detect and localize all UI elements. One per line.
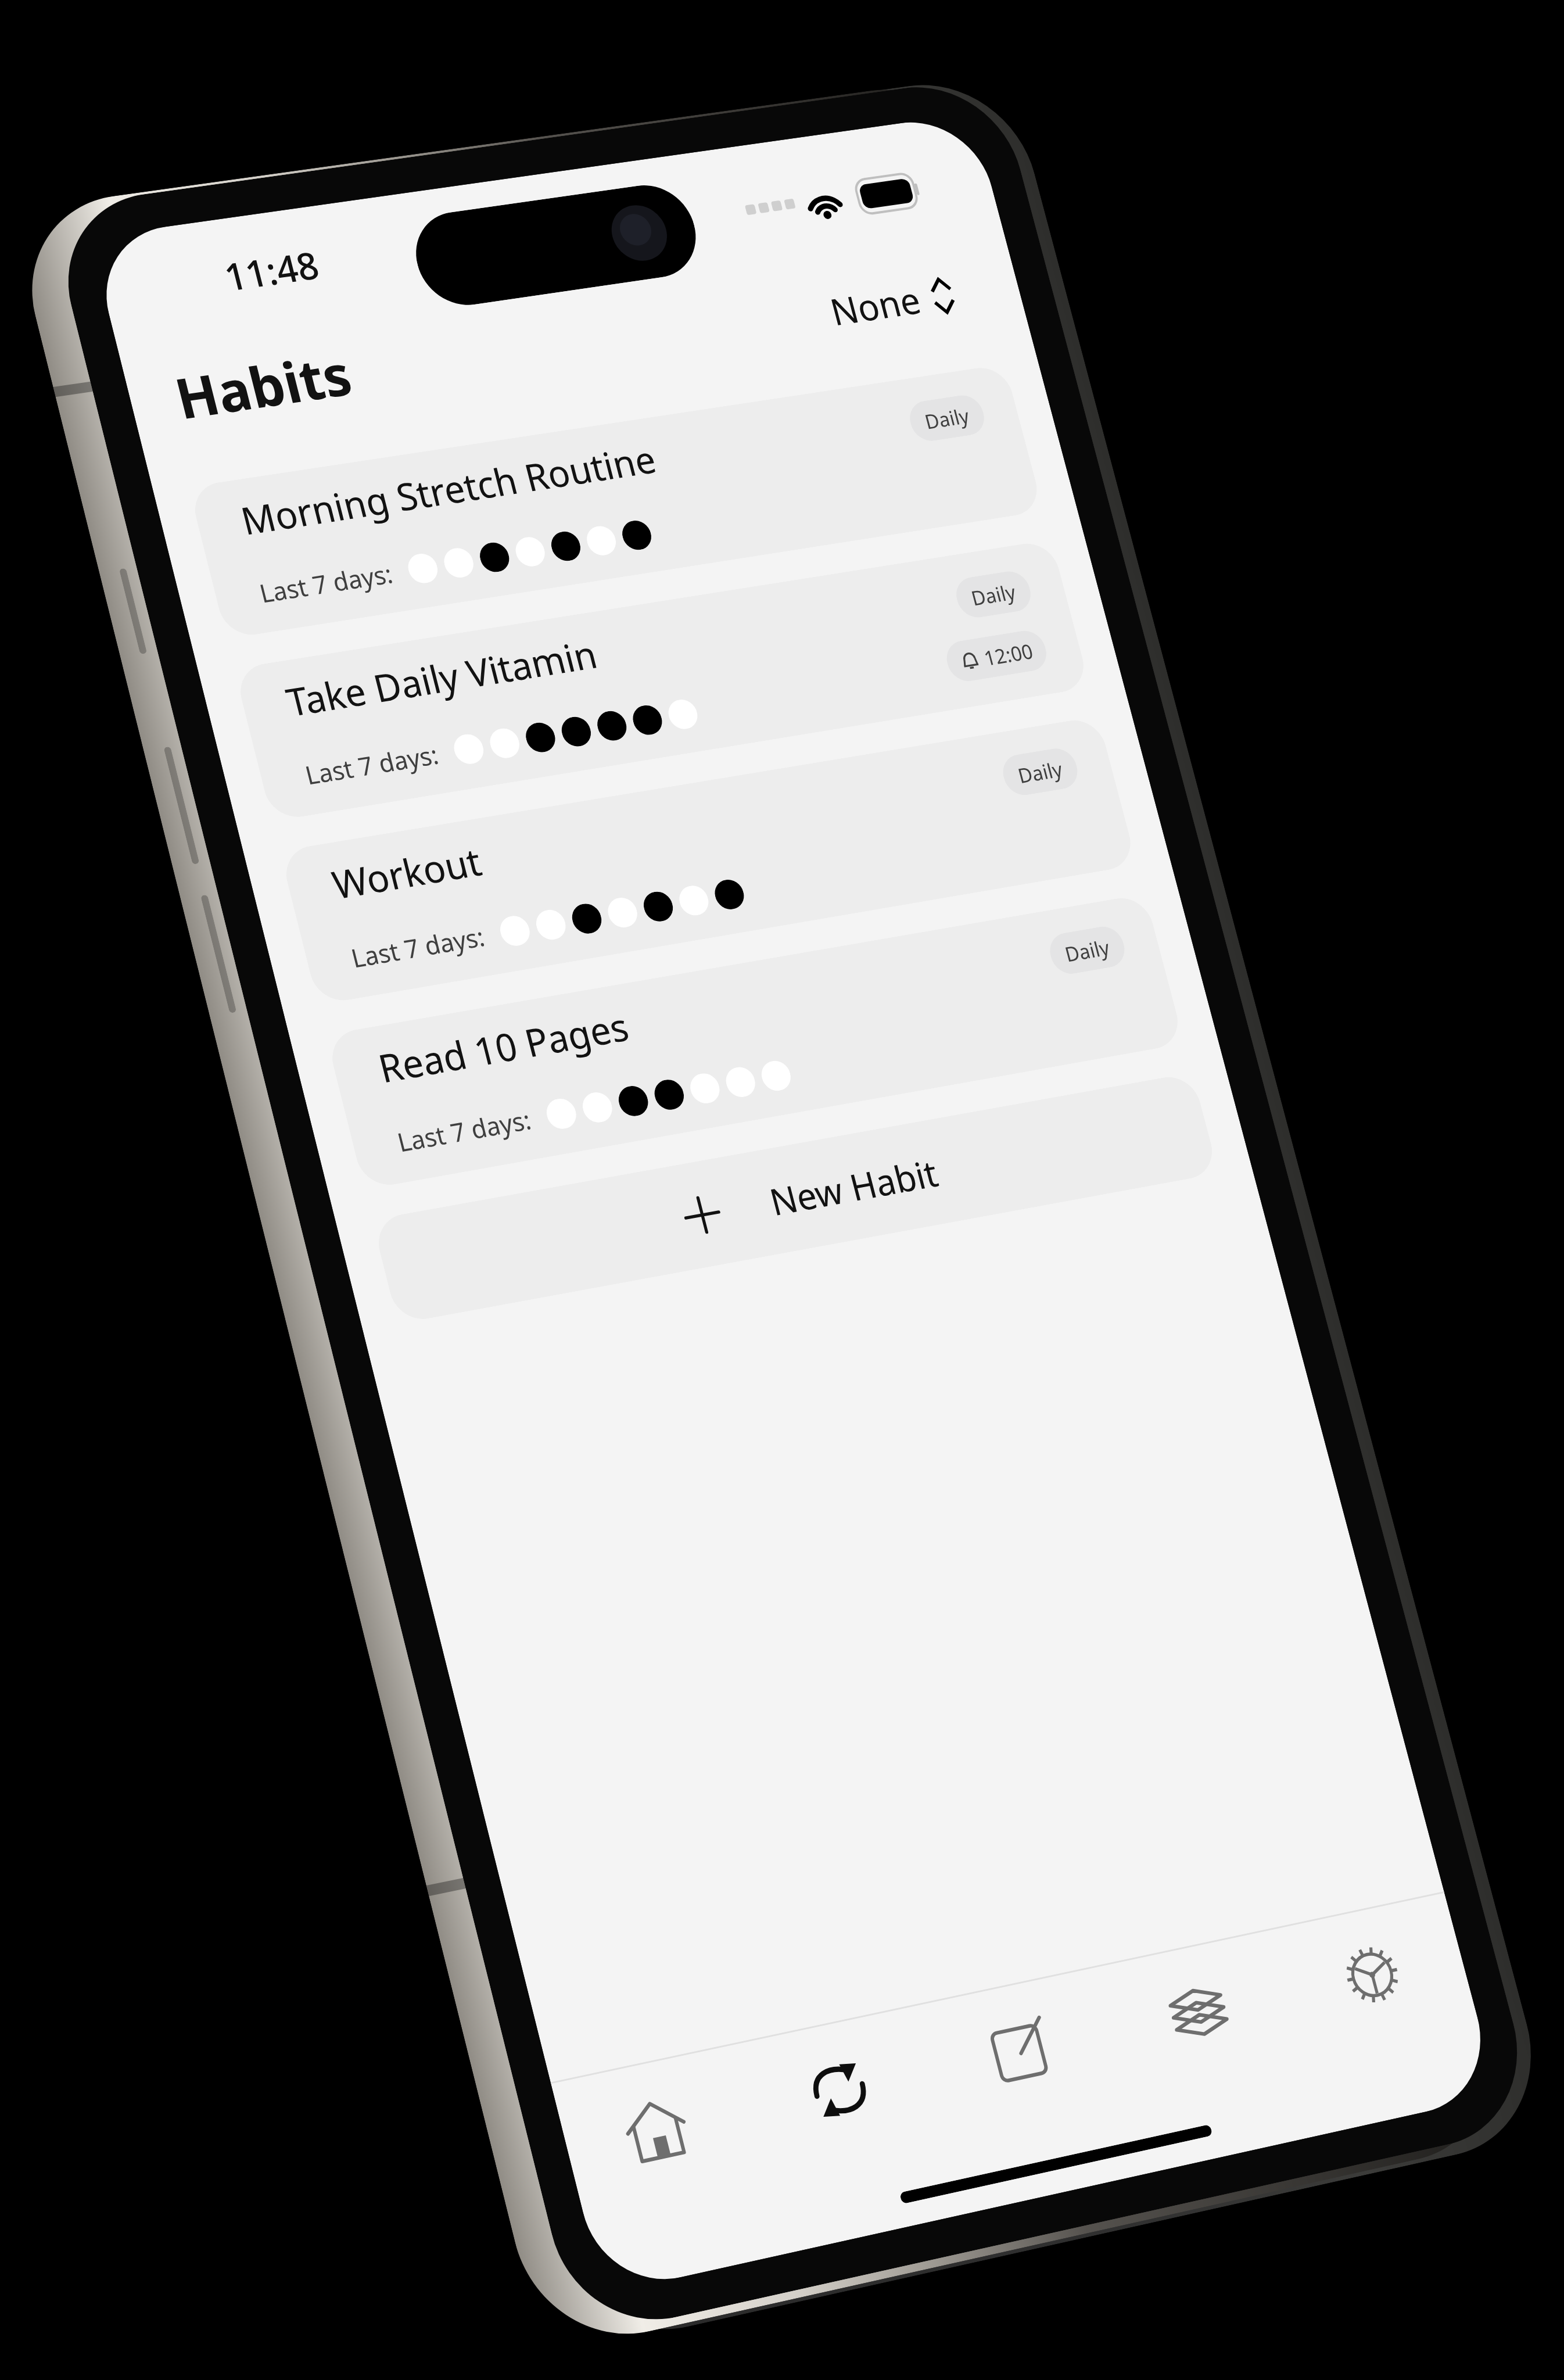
button[interactable]: Layers xyxy=(1094,1934,1302,2091)
staticText: Take Daily Vitamin xyxy=(281,628,603,727)
button[interactable]: Sync xyxy=(733,2010,945,2171)
button[interactable]: Read 10 Pages xyxy=(326,894,1185,1190)
staticText: Last 7 days: xyxy=(347,919,488,976)
staticText: Workout xyxy=(327,835,487,910)
staticText: Read 10 Pages xyxy=(373,1000,634,1094)
staticText: Daily xyxy=(1062,933,1113,967)
button[interactable]: Take Daily Vitamin xyxy=(234,540,1090,821)
button[interactable]: Edit xyxy=(915,1972,1125,2131)
staticText: None xyxy=(825,275,926,336)
staticText: Daily xyxy=(1015,755,1066,789)
staticText: Daily xyxy=(922,402,972,435)
button[interactable]: Home xyxy=(552,2049,763,2210)
button[interactable]: Workout xyxy=(280,716,1137,1005)
staticText: 12:00 xyxy=(981,637,1036,671)
staticText: Last 7 days: xyxy=(394,1102,535,1160)
button[interactable]: Morning Stretch Routine xyxy=(188,364,1044,639)
button[interactable]: New Habit xyxy=(372,1072,1219,1324)
staticText: Last 7 days: xyxy=(256,556,396,611)
staticText: New Habit xyxy=(764,1148,943,1227)
button[interactable]: Settings xyxy=(1271,1898,1473,2053)
staticText: Morning Stretch Routine xyxy=(236,433,661,546)
staticText: Last 7 days: xyxy=(302,737,442,793)
button[interactable]: None xyxy=(814,260,970,346)
staticText: Habits xyxy=(167,336,359,436)
staticText: Daily xyxy=(968,578,1019,611)
staticText: 11:48 xyxy=(219,239,324,302)
